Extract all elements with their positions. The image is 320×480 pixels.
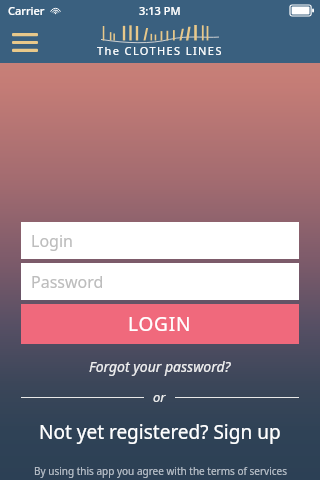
staticText: Password <box>31 271 104 293</box>
button[interactable]: Menu <box>8 25 42 59</box>
staticText: 3:13 PM <box>139 3 181 18</box>
button[interactable]: The CLOTHES LINES <box>97 25 223 58</box>
staticText: By using this app you agree with the ter… <box>34 464 287 478</box>
staticText: Forgot your password? <box>89 357 231 376</box>
staticText: Not yet registered? Sign up <box>39 419 281 445</box>
button[interactable]: LOGIN <box>21 304 299 344</box>
staticText: Login <box>31 230 73 252</box>
button[interactable]: Password <box>21 263 299 300</box>
button[interactable]: Forgot your password? <box>0 357 320 376</box>
button[interactable]: Not yet registered? Sign up <box>0 419 320 445</box>
staticText: Carrier <box>8 3 45 18</box>
staticText: LOGIN <box>128 311 192 337</box>
staticText: The CLOTHES LINES <box>97 43 223 58</box>
staticText: or <box>153 388 166 406</box>
button[interactable]: Login <box>21 222 299 259</box>
